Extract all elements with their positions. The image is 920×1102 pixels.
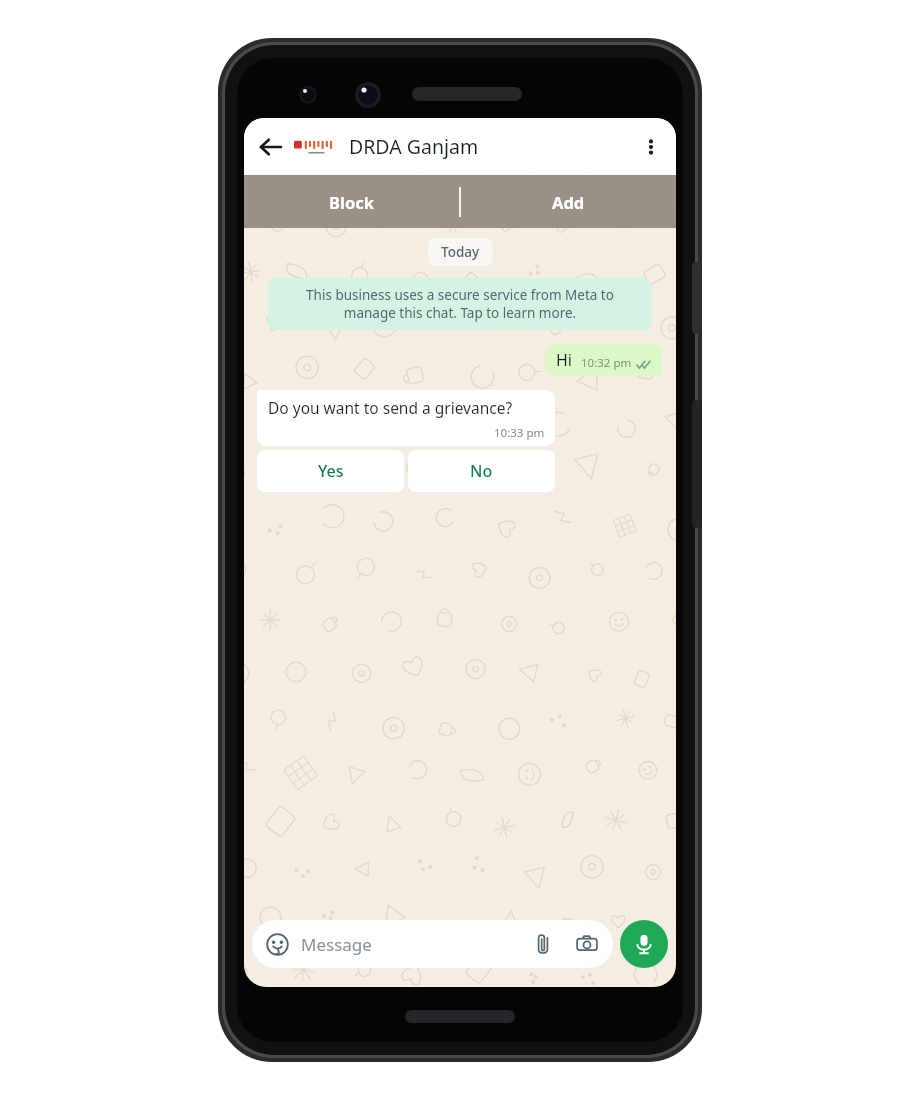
staticText: Yes (318, 460, 344, 482)
button[interactable]: Yes (257, 450, 404, 492)
staticText: Message (301, 933, 372, 956)
staticText: DRDA Ganjam (349, 133, 479, 160)
button[interactable]: This business uses a secure service from… (268, 278, 652, 330)
button[interactable]: Hi (545, 344, 662, 376)
staticText: This business uses a secure service from… (281, 286, 639, 322)
button[interactable]: Do you want to send a grievance? (257, 390, 555, 446)
staticText: Hi (556, 349, 572, 371)
staticText: Today (441, 243, 480, 261)
staticText: No (470, 460, 493, 482)
button[interactable]: Attach (529, 930, 557, 958)
button[interactable]: Emoji (252, 920, 613, 968)
staticText: Do you want to send a grievance? (268, 397, 513, 418)
staticText: Add (552, 191, 585, 213)
button[interactable]: More options (632, 128, 670, 166)
staticText: 10:33 pm (494, 425, 545, 441)
button[interactable]: Voice message (620, 920, 668, 968)
button[interactable]: Camera (573, 930, 601, 958)
button[interactable]: Today (428, 238, 493, 266)
button[interactable]: No (408, 450, 555, 492)
button[interactable]: Add (461, 175, 676, 228)
button[interactable]: Back (252, 128, 290, 166)
staticText: Block (329, 191, 374, 213)
staticText: 10:32 pm (581, 355, 632, 371)
button[interactable]: Emoji (264, 931, 290, 957)
button[interactable]: Block (244, 175, 459, 228)
button[interactable]: Contact photo (292, 134, 340, 160)
